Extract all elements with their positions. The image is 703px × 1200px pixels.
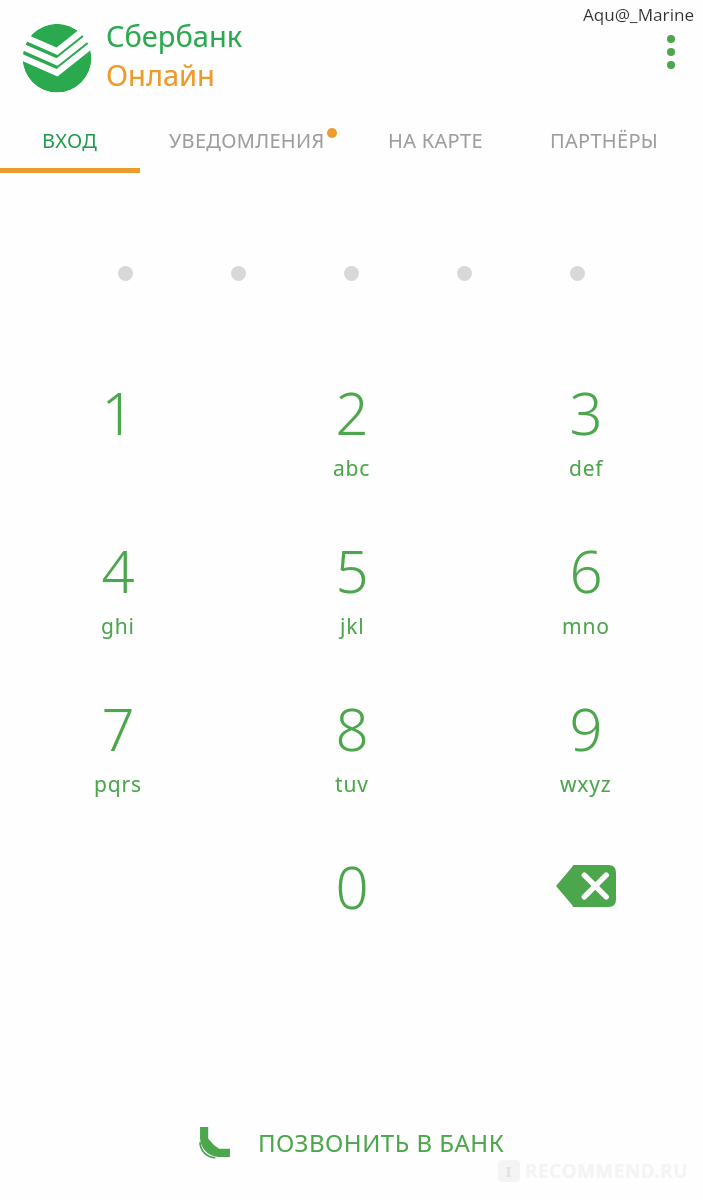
staticText: 4 bbox=[101, 531, 135, 610]
staticText: 2 bbox=[335, 373, 369, 452]
button[interactable]: 5 bbox=[235, 531, 469, 671]
staticText: 8 bbox=[335, 689, 369, 768]
button[interactable]: More options bbox=[653, 30, 689, 74]
button[interactable]: ВХОД bbox=[0, 100, 140, 180]
button[interactable]: 9 bbox=[469, 689, 703, 829]
staticText: pqrs bbox=[94, 770, 142, 799]
button[interactable]: 8 bbox=[235, 689, 469, 829]
button[interactable]: УВЕДОМЛЕНИЯ bbox=[140, 100, 365, 180]
staticText: RECOMMEND.RU bbox=[525, 1158, 689, 1184]
staticText: jkl bbox=[340, 612, 365, 641]
staticText: tuv bbox=[335, 770, 369, 799]
button[interactable]: НА КАРТЕ bbox=[365, 100, 505, 180]
staticText: 1 bbox=[101, 373, 135, 452]
staticText: def bbox=[569, 454, 604, 483]
staticText: ПОЗВОНИТЬ В БАНК bbox=[258, 1126, 505, 1159]
staticText: 0 bbox=[335, 847, 369, 926]
button[interactable]: 3 bbox=[469, 373, 703, 513]
staticText: wxyz bbox=[560, 770, 612, 799]
staticText: ПАРТНЁРЫ bbox=[550, 127, 659, 154]
staticText: 3 bbox=[569, 373, 603, 452]
staticText: 5 bbox=[335, 531, 369, 610]
staticText: ghi bbox=[101, 612, 135, 641]
staticText: УВЕДОМЛЕНИЯ bbox=[169, 127, 325, 154]
staticText: 9 bbox=[569, 689, 603, 768]
staticText: abc bbox=[333, 454, 371, 483]
staticText: НА КАРТЕ bbox=[388, 127, 483, 154]
button[interactable]: ПАРТНЁРЫ bbox=[505, 100, 703, 180]
button[interactable]: 7 bbox=[0, 689, 235, 829]
staticText: ВХОД bbox=[42, 127, 98, 154]
staticText: Онлайн bbox=[106, 55, 215, 94]
button[interactable]: Backspace bbox=[469, 847, 703, 957]
button[interactable]: 6 bbox=[469, 531, 703, 671]
staticText: 7 bbox=[101, 689, 135, 768]
button[interactable]: ПОЗВОНИТЬ В БАНК bbox=[0, 1100, 703, 1184]
button[interactable]: 0 bbox=[235, 847, 469, 957]
button[interactable]: 1 bbox=[0, 373, 235, 513]
staticText: Aqu@_Marine bbox=[583, 3, 695, 26]
staticText: Сбербанк bbox=[106, 16, 243, 55]
staticText: I bbox=[506, 1162, 512, 1181]
button[interactable]: 4 bbox=[0, 531, 235, 671]
staticText: 6 bbox=[569, 531, 603, 610]
staticText: mno bbox=[562, 612, 610, 641]
button[interactable]: 2 bbox=[235, 373, 469, 513]
